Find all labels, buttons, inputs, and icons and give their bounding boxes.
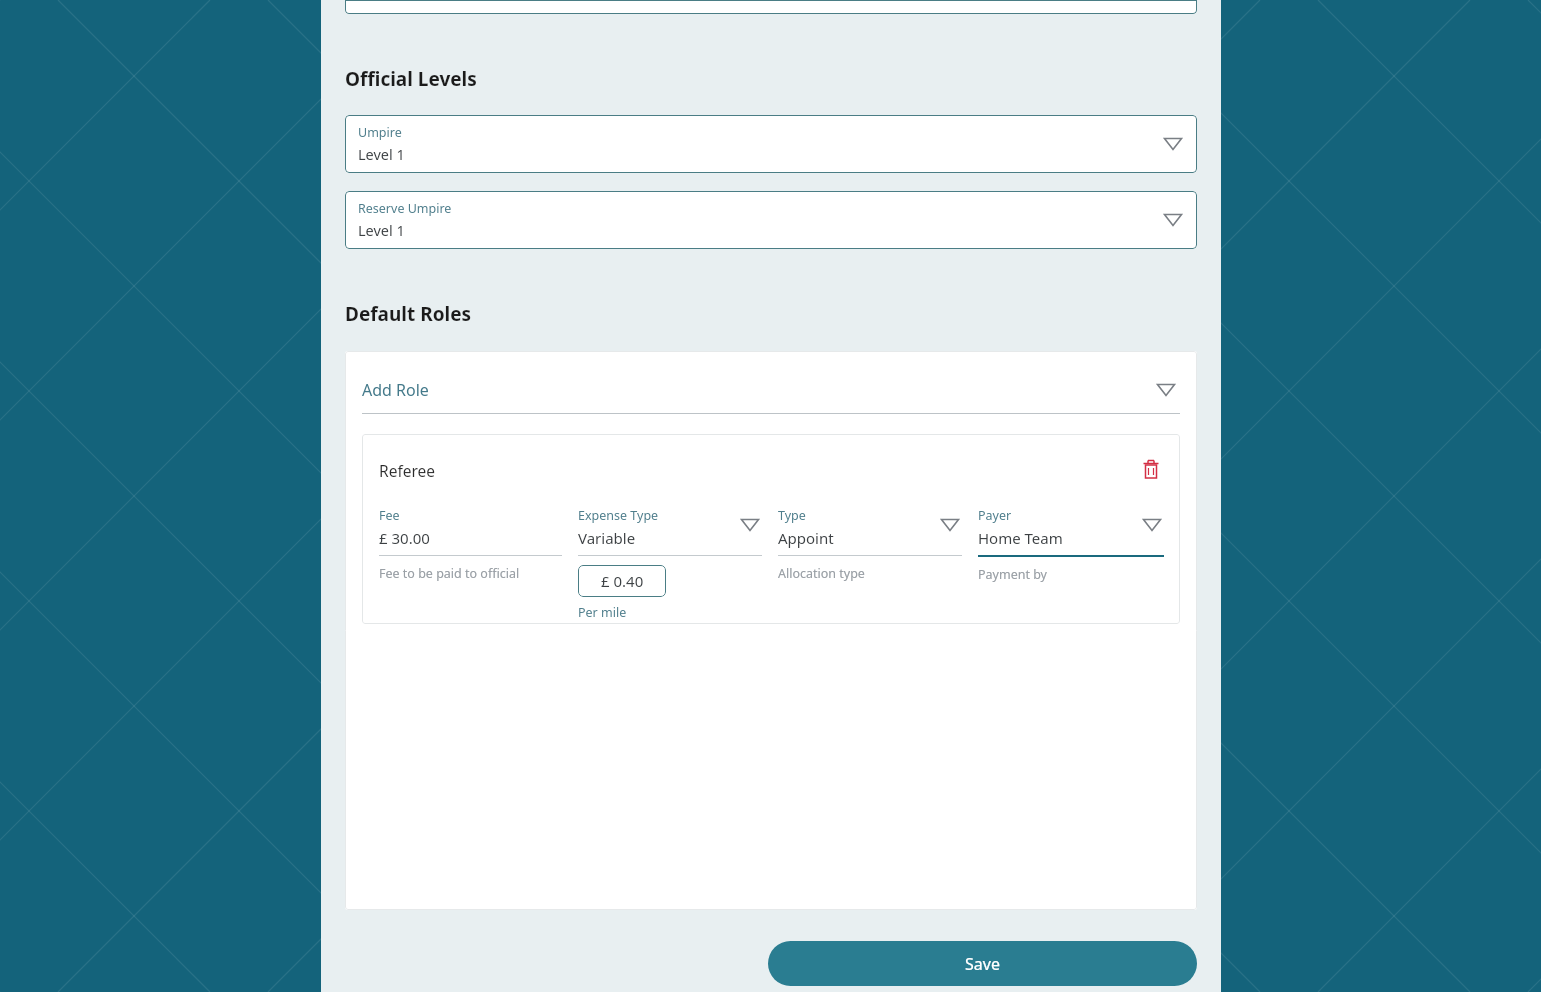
button[interactable] <box>345 0 1197 14</box>
staticText: Umpire <box>358 124 402 141</box>
staticText: £ 30.00 <box>379 528 430 548</box>
staticText: Add Role <box>362 379 429 401</box>
staticText: Referee <box>379 460 436 481</box>
staticText: £ 0.40 <box>601 571 644 591</box>
staticText: Official Levels <box>345 66 477 92</box>
staticText: Save <box>965 953 1000 975</box>
staticText: Fee <box>379 507 400 524</box>
staticText: Payer <box>978 507 1012 524</box>
staticText: Type <box>778 507 806 524</box>
staticText: Home Team <box>978 528 1063 548</box>
staticText: Expense Type <box>578 507 659 524</box>
staticText: Reserve Umpire <box>358 200 452 217</box>
staticText: Allocation type <box>778 565 865 582</box>
button[interactable]: Add Role <box>362 367 1180 413</box>
button[interactable]: Type <box>778 507 962 556</box>
staticText: Per mile <box>578 604 627 621</box>
button[interactable]: Payer <box>978 507 1164 557</box>
button[interactable]: Expense Type <box>578 507 762 556</box>
button[interactable]: Save <box>768 941 1197 986</box>
staticText: Payment by <box>978 566 1047 583</box>
staticText: Default Roles <box>345 301 472 327</box>
staticText: Appoint <box>778 528 834 548</box>
button[interactable]: £ 0.40 <box>578 565 666 597</box>
staticText: Level 1 <box>358 144 405 164</box>
button[interactable]: Delete role <box>1136 455 1166 485</box>
button[interactable]: Umpire <box>345 115 1197 173</box>
button[interactable]: Fee <box>379 507 562 556</box>
staticText: Level 1 <box>358 220 405 240</box>
staticText: Variable <box>578 528 636 548</box>
staticText: Fee to be paid to official <box>379 565 520 582</box>
button[interactable]: Reserve Umpire <box>345 191 1197 249</box>
